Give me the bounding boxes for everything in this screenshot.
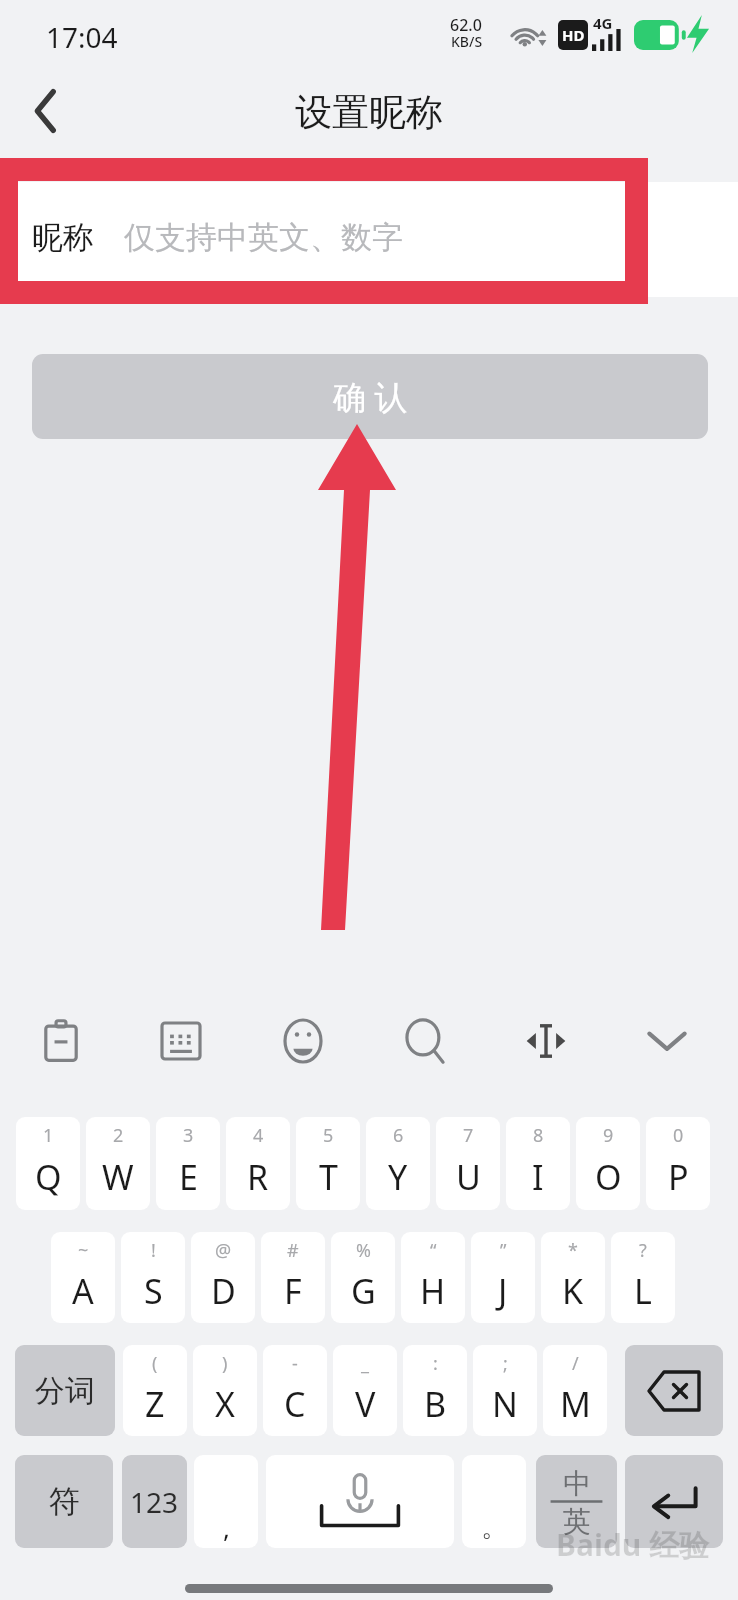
- staticText: -: [292, 1351, 298, 1376]
- button[interactable]: !: [121, 1232, 185, 1323]
- staticText: Baidu 经验: [556, 1524, 710, 1565]
- staticText: 仅支持中英文、数字: [124, 218, 403, 257]
- staticText: 62.0: [450, 14, 482, 36]
- staticText: B: [424, 1381, 447, 1427]
- button[interactable]: *: [541, 1232, 605, 1323]
- staticText: H: [420, 1268, 446, 1314]
- staticText: 确 认: [333, 374, 408, 419]
- button[interactable]: Emoji: [268, 1010, 338, 1072]
- staticText: M: [560, 1381, 591, 1427]
- staticText: ,: [223, 1510, 230, 1545]
- button[interactable]: “: [401, 1232, 465, 1323]
- button[interactable]: ”: [471, 1232, 535, 1323]
- staticText: 5: [323, 1123, 334, 1148]
- staticText: 昵称: [32, 218, 94, 257]
- staticText: ;: [503, 1351, 508, 1376]
- staticText: Y: [388, 1154, 408, 1200]
- staticText: C: [284, 1381, 306, 1427]
- staticText: %: [356, 1238, 371, 1263]
- staticText: /: [572, 1351, 579, 1376]
- staticText: 分词: [35, 1372, 95, 1410]
- staticText: E: [179, 1154, 198, 1200]
- staticText: I: [532, 1154, 544, 1200]
- button[interactable]: 123: [122, 1455, 187, 1548]
- button[interactable]: %: [331, 1232, 395, 1323]
- button[interactable]: 确 认: [32, 354, 708, 439]
- button[interactable]: 1: [16, 1117, 80, 1210]
- staticText: Z: [145, 1381, 165, 1427]
- button[interactable]: /: [543, 1345, 607, 1436]
- button[interactable]: Backspace: [625, 1345, 723, 1436]
- button[interactable]: Back: [12, 80, 80, 142]
- button[interactable]: 6: [366, 1117, 430, 1210]
- staticText: S: [144, 1268, 163, 1314]
- staticText: L: [634, 1268, 652, 1314]
- staticText: A: [72, 1268, 94, 1314]
- button[interactable]: 符: [15, 1455, 113, 1548]
- button[interactable]: #: [261, 1232, 325, 1323]
- staticText: “: [430, 1238, 437, 1263]
- staticText: 符: [49, 1482, 80, 1521]
- staticText: 中: [563, 1466, 591, 1501]
- button[interactable]: 5: [296, 1117, 360, 1210]
- button[interactable]: Enter: [625, 1455, 723, 1548]
- staticText: ): [222, 1351, 228, 1376]
- button[interactable]: Move cursor: [511, 1010, 581, 1072]
- button[interactable]: 分词: [15, 1345, 115, 1436]
- staticText: 2: [113, 1123, 124, 1148]
- staticText: ~: [78, 1238, 89, 1263]
- staticText: O: [595, 1154, 622, 1200]
- button[interactable]: 3: [156, 1117, 220, 1210]
- button[interactable]: Keyboard layout: [146, 1010, 216, 1072]
- staticText: *: [568, 1238, 578, 1263]
- button[interactable]: 9: [576, 1117, 640, 1210]
- button[interactable]: @: [191, 1232, 255, 1323]
- button[interactable]: Hide keyboard: [632, 1010, 702, 1072]
- staticText: 9: [603, 1123, 614, 1148]
- staticText: K: [562, 1268, 584, 1314]
- button[interactable]: ,: [194, 1455, 258, 1548]
- button[interactable]: _: [333, 1345, 397, 1436]
- button[interactable]: :: [403, 1345, 467, 1436]
- staticText: 英: [563, 1504, 591, 1539]
- staticText: HD: [562, 25, 585, 45]
- button[interactable]: ~: [51, 1232, 115, 1323]
- staticText: #: [287, 1238, 299, 1263]
- button[interactable]: Clipboard: [26, 1010, 96, 1072]
- button[interactable]: 0: [646, 1117, 710, 1210]
- button[interactable]: Search: [390, 1010, 460, 1072]
- staticText: :: [433, 1351, 438, 1376]
- staticText: 4G: [593, 13, 613, 33]
- staticText: 1: [43, 1123, 54, 1148]
- staticText: 设置昵称: [295, 89, 443, 136]
- button[interactable]: 。: [462, 1455, 526, 1548]
- staticText: T: [319, 1154, 338, 1200]
- staticText: 8: [533, 1123, 544, 1148]
- staticText: F: [284, 1268, 302, 1314]
- staticText: D: [211, 1268, 236, 1314]
- staticText: Q: [35, 1154, 62, 1200]
- staticText: 0: [673, 1123, 684, 1148]
- staticText: P: [668, 1154, 689, 1200]
- staticText: 123: [130, 1483, 179, 1521]
- button[interactable]: (: [123, 1345, 187, 1436]
- button[interactable]: 中: [536, 1455, 617, 1548]
- staticText: (: [152, 1351, 158, 1376]
- button[interactable]: 4: [226, 1117, 290, 1210]
- button[interactable]: 2: [86, 1117, 150, 1210]
- staticText: KB/S: [451, 32, 483, 51]
- button[interactable]: ): [193, 1345, 257, 1436]
- staticText: 。: [481, 1511, 507, 1544]
- staticText: N: [492, 1381, 518, 1427]
- staticText: _: [361, 1351, 369, 1376]
- button[interactable]: 7: [436, 1117, 500, 1210]
- staticText: G: [351, 1268, 376, 1314]
- button[interactable]: 昵称: [0, 182, 738, 297]
- staticText: ”: [500, 1238, 507, 1263]
- button[interactable]: 8: [506, 1117, 570, 1210]
- staticText: J: [498, 1268, 508, 1314]
- button[interactable]: ;: [473, 1345, 537, 1436]
- button[interactable]: ?: [611, 1232, 675, 1323]
- button[interactable]: Space: [266, 1455, 454, 1548]
- button[interactable]: -: [263, 1345, 327, 1436]
